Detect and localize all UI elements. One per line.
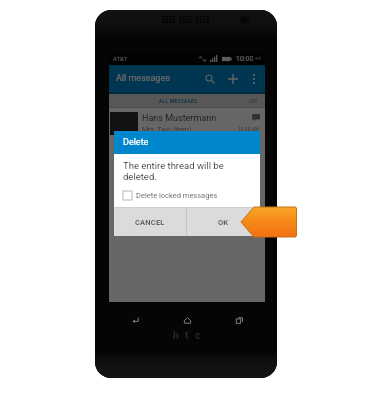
staticText: The entire thread will be deleted. bbox=[123, 160, 254, 182]
staticText: Delete bbox=[123, 137, 149, 148]
staticText: 10:00 bbox=[236, 55, 254, 63]
staticText: Delete locked messages bbox=[136, 191, 218, 200]
staticText: Hans Mustermann bbox=[142, 113, 217, 124]
button[interactable]: Back bbox=[128, 314, 142, 326]
button[interactable]: New message bbox=[222, 66, 244, 92]
staticText: Mrs. Two (item) bbox=[142, 126, 192, 134]
staticText: CANCEL bbox=[135, 218, 165, 227]
button[interactable]: Recent apps bbox=[232, 314, 246, 326]
button[interactable]: Home bbox=[180, 314, 194, 326]
staticText: ALL MESSAGES bbox=[159, 98, 198, 104]
staticText: am bbox=[255, 56, 262, 61]
button[interactable]: Delete locked messages bbox=[123, 191, 254, 200]
staticText: 300 bbox=[249, 98, 258, 104]
staticText: 10:30 AM bbox=[238, 126, 260, 132]
button[interactable]: OK bbox=[187, 208, 260, 236]
button[interactable]: More options bbox=[245, 66, 262, 92]
staticText: AT&T bbox=[113, 55, 128, 62]
button[interactable]: Hans Mustermann bbox=[109, 108, 265, 138]
button[interactable]: ALL MESSAGES bbox=[109, 94, 265, 107]
button[interactable]: All messages bbox=[109, 65, 265, 92]
button[interactable]: Search bbox=[199, 66, 221, 92]
staticText: htc bbox=[173, 330, 207, 342]
button[interactable]: CANCEL bbox=[114, 208, 186, 236]
staticText: All messages bbox=[116, 73, 170, 84]
staticText: OK bbox=[218, 218, 229, 227]
